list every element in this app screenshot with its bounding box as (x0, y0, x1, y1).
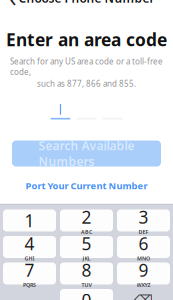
staticText: Choose Phone Number (18, 0, 154, 6)
button[interactable]: Back (0, 0, 26, 9)
button[interactable]: 2 (60, 209, 113, 231)
staticText: Enter an area code (6, 28, 167, 51)
staticText: Search for any US area code or a toll-fr… (10, 56, 163, 77)
button[interactable]: 0 (60, 289, 113, 300)
button[interactable]: 7 (3, 262, 56, 284)
button[interactable]: 9 (117, 262, 170, 284)
button[interactable]: 8 (60, 262, 113, 284)
staticText: 3 (138, 205, 148, 228)
staticText: 9 (138, 258, 148, 281)
button[interactable]: 3 (117, 209, 170, 231)
staticText: 8 (81, 258, 91, 281)
staticText: Search Available Numbers (38, 138, 134, 169)
staticText: DEF (138, 228, 148, 236)
staticText: 2 (81, 205, 91, 228)
button[interactable]: 5 (60, 236, 113, 258)
staticText: ‹ (9, 0, 16, 13)
staticText: PQRS (23, 281, 36, 289)
staticText: JKL (82, 255, 90, 262)
staticText: TUV (81, 281, 91, 289)
staticText: WXYZ (136, 281, 150, 289)
staticText: such as 877, 866 and 855. (37, 78, 136, 89)
staticText: 0 (81, 288, 91, 300)
staticText: 6 (138, 232, 148, 255)
staticText: MNO (137, 255, 150, 262)
button[interactable]: 1 (3, 209, 56, 231)
button[interactable]: Search Available Numbers (12, 140, 161, 166)
button[interactable]: Delete (117, 289, 170, 300)
staticText: 4 (24, 232, 34, 255)
staticText: 1 (24, 209, 34, 232)
staticText: 7 (24, 258, 34, 281)
staticText: GHI (24, 255, 34, 262)
button[interactable]: 6 (117, 236, 170, 258)
button[interactable]: 4 (3, 236, 56, 258)
button[interactable]: Port Your Current Number (19, 175, 153, 196)
staticText: 5 (81, 232, 91, 255)
staticText: ABC (81, 228, 92, 236)
staticText: ⌫ (134, 292, 153, 300)
staticText: Port Your Current Number (25, 179, 147, 192)
